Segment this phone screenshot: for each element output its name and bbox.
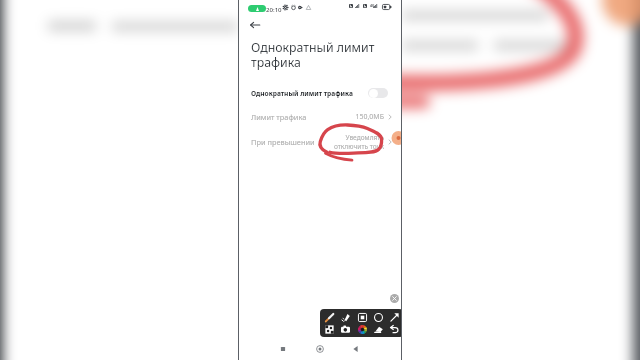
button[interactable]: Rectangle	[354, 311, 370, 324]
button[interactable]: Back	[245, 15, 265, 35]
button[interactable]: Mosaic	[321, 324, 337, 335]
button[interactable]: Arrow	[386, 311, 401, 324]
button[interactable]: Back	[348, 341, 364, 357]
button[interactable]: Undo	[386, 324, 401, 335]
button[interactable]: Однократный лимит трафика	[239, 83, 401, 103]
staticText: Однократный лимит трафика	[251, 39, 391, 71]
staticText: 20:10	[266, 5, 282, 13]
staticText: Лимит трафика	[251, 112, 307, 122]
button[interactable]: Recents	[275, 341, 291, 357]
button[interactable]: Лимит трафика	[239, 107, 401, 127]
button[interactable]: Circle	[370, 311, 386, 324]
button[interactable]: Eraser	[370, 324, 386, 335]
button[interactable]: Brush	[321, 311, 337, 324]
button[interactable]: Camera	[337, 324, 353, 335]
staticText: Однократный лимит трафика	[251, 89, 353, 98]
button[interactable]: Color	[354, 324, 370, 335]
button[interactable]: Close	[390, 294, 399, 303]
staticText: Уведомлять отключить точк	[333, 133, 384, 151]
staticText: 150,0МБ	[355, 112, 384, 122]
staticText: При превышении	[251, 137, 315, 147]
button[interactable]: Home	[312, 341, 328, 357]
staticText: 4G	[370, 3, 375, 8]
button[interactable]: При превышении	[239, 132, 401, 152]
button[interactable]: Marker	[337, 311, 353, 324]
